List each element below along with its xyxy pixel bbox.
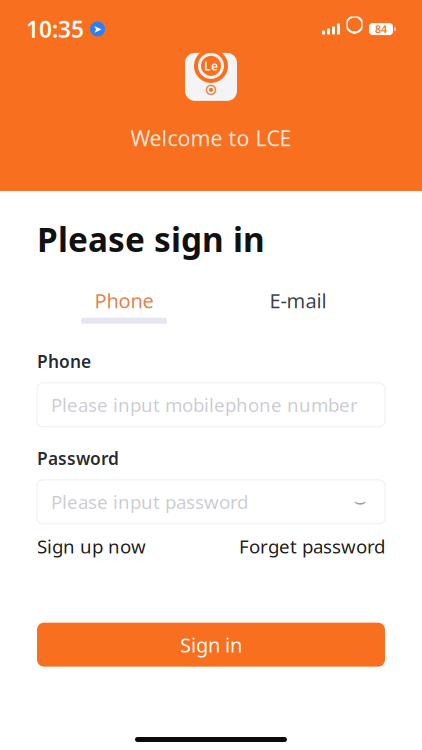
- staticText: Phone: [37, 350, 91, 373]
- button[interactable]: E-mail: [211, 287, 385, 324]
- staticText: Forget password: [239, 534, 385, 559]
- button[interactable]: Forget password: [239, 534, 385, 559]
- staticText: Le: [204, 58, 218, 74]
- staticText: Password: [37, 447, 119, 470]
- staticText: Sign up now: [37, 534, 146, 559]
- staticText: 10:35: [26, 14, 84, 44]
- button[interactable]: Sign up now: [37, 534, 146, 559]
- button[interactable]: Show password: [349, 491, 371, 513]
- staticText: E-mail: [269, 287, 326, 314]
- staticText: Please input mobilephone number: [51, 392, 358, 417]
- button[interactable]: Sign in: [37, 623, 385, 667]
- staticText: Phone: [94, 287, 153, 314]
- staticText: Please input password: [51, 489, 248, 514]
- staticText: ⌣: [353, 492, 366, 512]
- staticText: Sign in: [180, 631, 242, 658]
- staticText: Please sign in: [37, 217, 265, 261]
- staticText: Welcome to LCE: [130, 124, 291, 152]
- staticText: ➤: [93, 23, 102, 35]
- staticText: 84: [375, 22, 387, 36]
- button[interactable]: Phone: [37, 287, 211, 324]
